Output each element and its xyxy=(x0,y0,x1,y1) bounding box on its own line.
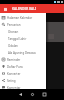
button[interactable]: Odalan xyxy=(0,42,46,49)
staticText: Pencarian xyxy=(7,23,21,27)
staticText: Tanggal Lahir xyxy=(8,37,27,41)
staticText: Daftar Pura xyxy=(7,65,23,69)
staticText: Komentar xyxy=(7,86,21,90)
staticText: Otonan xyxy=(8,30,19,34)
staticText: Odalan xyxy=(8,44,18,48)
button[interactable]: Konverter xyxy=(0,70,46,77)
button[interactable]: Otonan xyxy=(0,28,46,35)
button[interactable]: Open navigation drawer xyxy=(2,6,8,12)
staticText: Ala Ayuning Dewasa xyxy=(8,51,36,55)
button[interactable]: Reminder xyxy=(0,56,46,63)
staticText: Seting xyxy=(7,79,16,83)
button[interactable]: Halaman Kalendar xyxy=(0,14,46,21)
button[interactable]: Home xyxy=(26,89,38,100)
button[interactable]: Recents xyxy=(38,89,50,100)
button[interactable]: Tanggal Lahir xyxy=(0,35,46,42)
staticText: KALENDER BALI xyxy=(12,7,37,11)
staticText: Reminder xyxy=(7,58,21,62)
button[interactable]: Back xyxy=(14,89,26,100)
button[interactable]: Pencarian xyxy=(0,21,46,28)
staticText: Konverter xyxy=(7,72,21,76)
button[interactable]: Daftar Pura xyxy=(0,63,46,70)
button[interactable]: Seting xyxy=(0,77,46,84)
button[interactable]: Ala Ayuning Dewasa xyxy=(0,49,46,56)
button[interactable]: Komentar xyxy=(0,84,46,91)
staticText: Halaman Kalendar xyxy=(7,16,33,20)
